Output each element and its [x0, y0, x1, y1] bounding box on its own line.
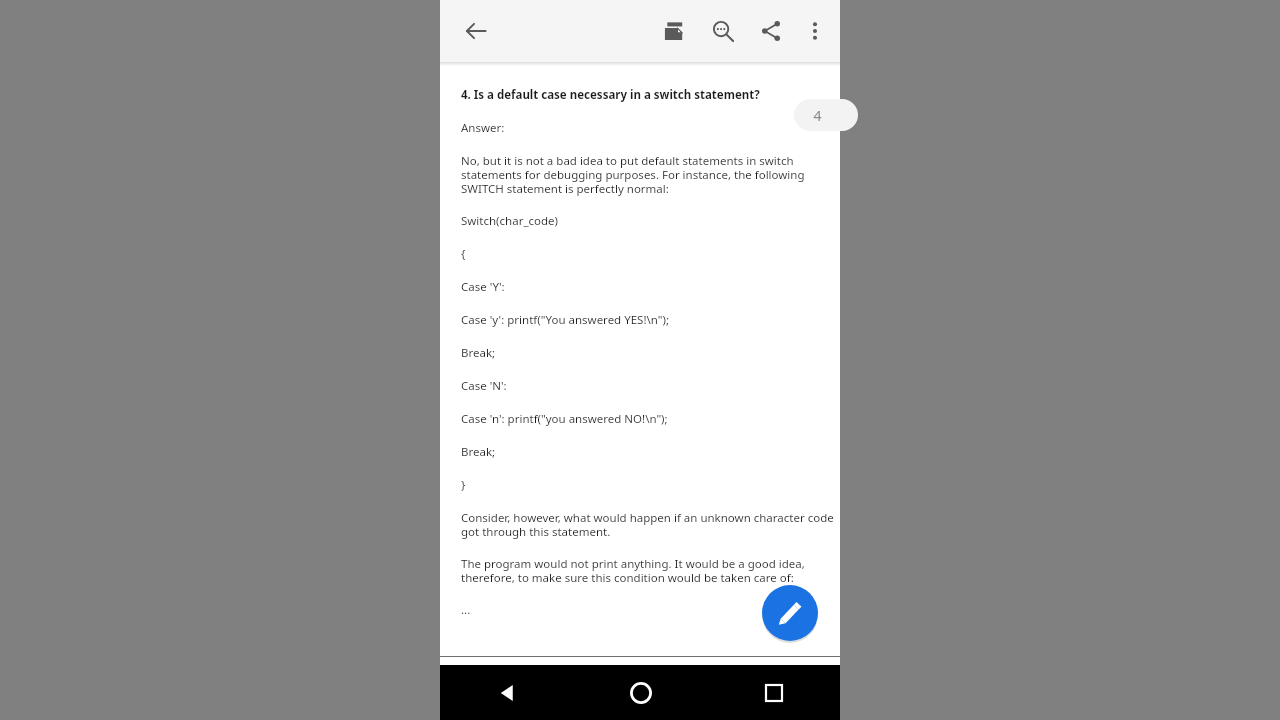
button[interactable]: Recent apps: [707, 665, 840, 720]
staticText: 4: [813, 106, 822, 125]
button[interactable]: Edit: [762, 585, 818, 641]
button[interactable]: Back: [454, 9, 498, 53]
staticText: Break;: [461, 444, 840, 460]
staticText: Case 'N':: [461, 378, 840, 394]
button[interactable]: Back: [440, 665, 574, 720]
button[interactable]: Share: [752, 12, 790, 50]
button[interactable]: More options: [796, 12, 834, 50]
staticText: Break;: [461, 345, 840, 361]
staticText: 4. Is a default case necessary in a swit…: [461, 87, 840, 103]
staticText: Consider, however, what would happen if …: [461, 510, 840, 539]
staticText: No, but it is not a bad idea to put defa…: [461, 153, 840, 196]
button[interactable]: 4: [794, 99, 858, 131]
staticText: Switch(char_code): [461, 213, 840, 229]
staticText: Case 'y': printf("You answered YES!\n");: [461, 312, 840, 328]
staticText: Case 'Y':: [461, 279, 840, 295]
button[interactable]: Search: [704, 12, 742, 50]
staticText: {: [461, 246, 840, 262]
staticText: }: [461, 477, 840, 493]
staticText: ...: [461, 602, 840, 618]
staticText: Answer:: [461, 120, 840, 136]
staticText: The program would not print anything. It…: [461, 556, 840, 585]
staticText: Case 'n': printf("you answered NO!\n");: [461, 411, 840, 427]
button[interactable]: Home: [574, 665, 707, 720]
button[interactable]: Page layout: [656, 12, 694, 50]
